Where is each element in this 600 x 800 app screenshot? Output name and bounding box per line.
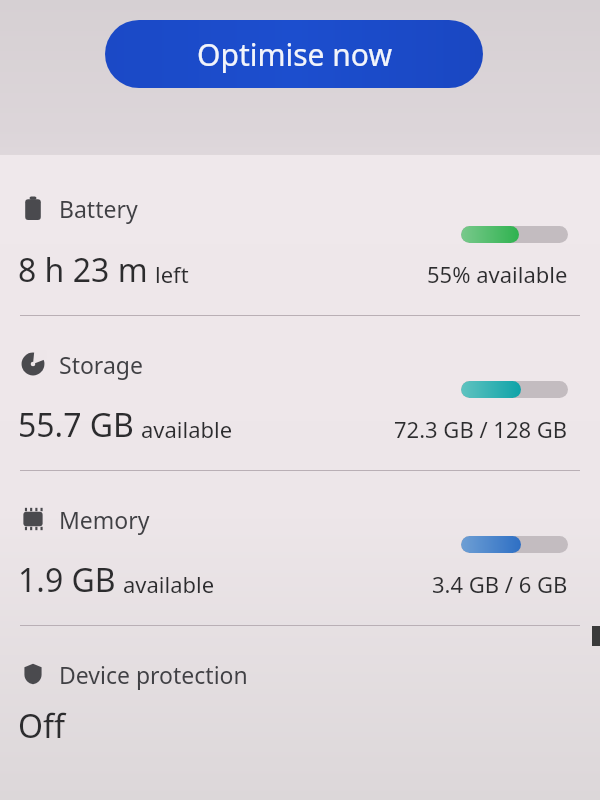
staticText: 8 h 23 m bbox=[18, 248, 148, 292]
button[interactable]: Device protection bbox=[20, 648, 450, 700]
staticText: 72.3 GB / 128 GB bbox=[394, 414, 568, 444]
staticText: 55.7 GB bbox=[18, 403, 134, 447]
button[interactable]: Battery bbox=[20, 182, 420, 234]
button[interactable]: Storage bbox=[20, 338, 420, 390]
button[interactable]: Optimise now bbox=[105, 20, 483, 88]
button[interactable]: Memory bbox=[20, 493, 420, 545]
staticText: left bbox=[155, 259, 189, 289]
staticText: Storage bbox=[59, 349, 143, 380]
staticText: available bbox=[123, 569, 215, 599]
staticText: available bbox=[141, 414, 233, 444]
staticText: Battery bbox=[59, 193, 138, 224]
staticText: Optimise now bbox=[197, 34, 392, 75]
staticText: Memory bbox=[59, 504, 150, 535]
staticText: 55% available bbox=[427, 259, 568, 289]
staticText: Device protection bbox=[59, 659, 248, 690]
staticText: Off bbox=[18, 704, 66, 748]
staticText: 1.9 GB bbox=[18, 558, 116, 602]
staticText: 3.4 GB / 6 GB bbox=[432, 569, 568, 599]
